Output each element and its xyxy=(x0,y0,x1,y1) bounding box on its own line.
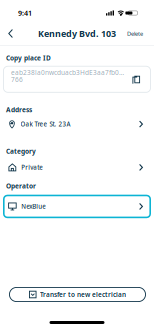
staticText: Copy place ID xyxy=(6,53,51,62)
staticText: Address xyxy=(6,105,32,114)
staticText: Category xyxy=(6,147,36,156)
button[interactable]: Transfer to new electrician xyxy=(9,287,146,302)
staticText: eab238la0nwcduacb3HdE3aa7fb0726b40c xyxy=(11,68,124,77)
button[interactable]: Copy place ID xyxy=(3,66,151,93)
staticText: Private xyxy=(21,163,43,172)
staticText: Transfer to new electrician xyxy=(40,290,126,299)
button[interactable]: Private xyxy=(0,157,154,177)
button[interactable]: Oak Tree St. 23A xyxy=(0,114,154,134)
button[interactable]: Delete xyxy=(127,30,154,37)
staticText: NexBlue xyxy=(21,202,46,211)
staticText: 766 xyxy=(11,75,23,84)
staticText: Oak Tree St. 23A xyxy=(20,120,70,128)
staticText: Delete xyxy=(127,30,143,37)
button[interactable]: NexBlue xyxy=(3,195,151,218)
staticText: Operator xyxy=(6,182,36,190)
staticText: Kennedy Bvd. 103 xyxy=(38,27,116,40)
staticText: 9:41 xyxy=(18,8,32,18)
button[interactable]: Back xyxy=(0,29,19,38)
